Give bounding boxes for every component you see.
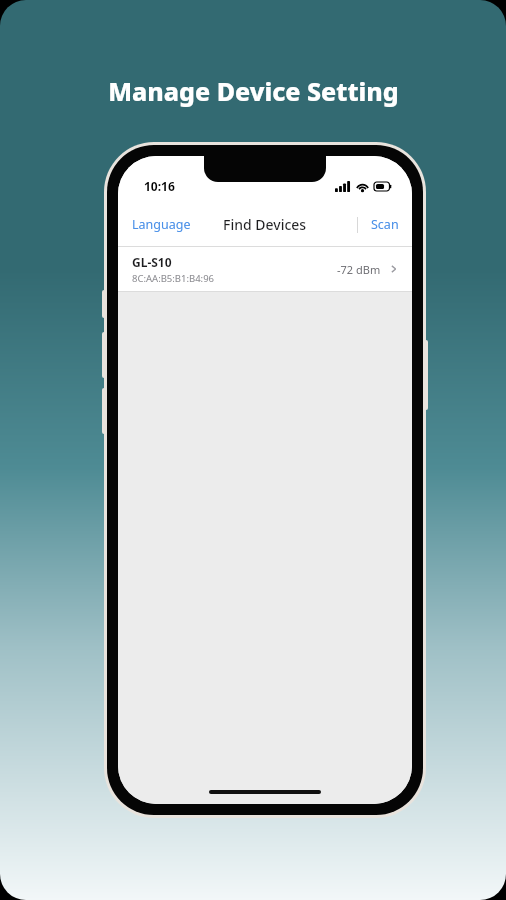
button[interactable]: Language: [118, 208, 205, 241]
staticText: Manage Device Setting: [108, 74, 399, 108]
button[interactable]: Scan: [358, 208, 412, 241]
staticText: -72 dBm: [337, 262, 381, 277]
staticText: GL-S10: [132, 254, 172, 270]
staticText: 10:16: [144, 178, 175, 194]
other: Open device details: [388, 263, 400, 275]
staticText: Find Devices: [223, 215, 307, 234]
staticText: Scan: [371, 216, 399, 233]
button[interactable]: GL-S10: [118, 247, 412, 291]
staticText: 8C:AA:B5:B1:B4:96: [132, 272, 215, 285]
staticText: Language: [132, 216, 191, 233]
